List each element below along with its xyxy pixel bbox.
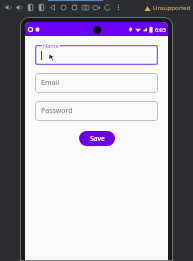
staticText: Password [41,106,73,116]
staticText: Email [41,78,59,88]
button[interactable]: Save [79,131,115,146]
button[interactable]: Emulator control [47,2,58,13]
button[interactable]: Emulator control [80,2,91,13]
button[interactable]: Emulator control [102,2,113,13]
button[interactable]: Emulator control [3,2,14,13]
button[interactable]: Password [35,101,158,121]
button[interactable]: Emulator control [113,2,124,13]
staticText: Name [43,42,59,49]
button[interactable]: Name [35,42,158,65]
button[interactable]: Emulator control [36,2,47,13]
staticText: Save [90,134,105,143]
button[interactable]: Emulator control [58,2,69,13]
button[interactable]: Emulator control [14,2,25,13]
staticText: Unsupported [153,4,191,12]
button[interactable]: Emulator control [69,2,80,13]
button[interactable]: Emulator control [25,2,36,13]
staticText: 6:03 [155,26,166,33]
button[interactable]: Email [35,73,158,93]
button[interactable]: Emulator control [91,2,102,13]
